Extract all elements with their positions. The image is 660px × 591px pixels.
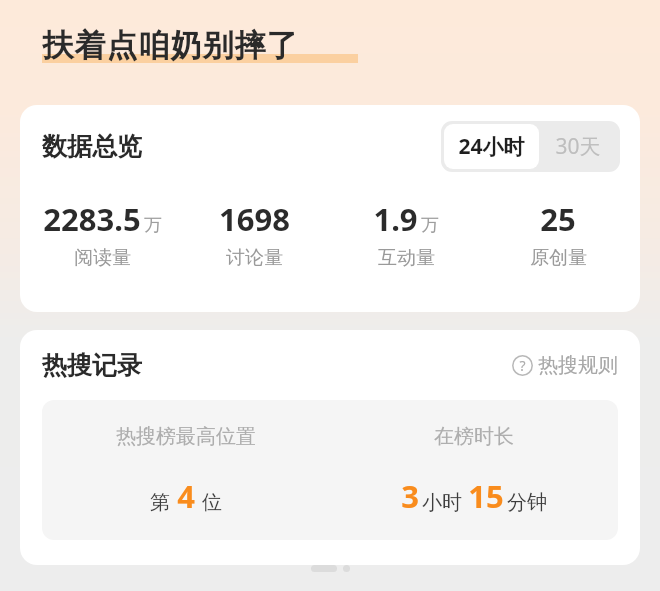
button[interactable]: 30天 [539, 124, 617, 169]
staticText: 扶着点咱奶别摔了 [42, 26, 298, 65]
staticText: 小时 [422, 490, 462, 515]
button[interactable]: 24小时 [444, 124, 539, 169]
staticText: 热搜榜最高位置 [116, 424, 256, 449]
staticText: 数据总览 [42, 131, 142, 162]
staticText: 24小时 [458, 132, 525, 161]
staticText: 30天 [555, 132, 601, 161]
staticText: 1.9 [373, 198, 418, 240]
staticText: 阅读量 [74, 246, 131, 270]
staticText: 1698 [219, 198, 290, 240]
staticText: 原创量 [530, 246, 587, 270]
button[interactable]: 在榜时长 [330, 400, 618, 540]
staticText: 互动量 [378, 246, 435, 270]
staticText: 讨论量 [226, 246, 283, 270]
staticText: 4 [177, 475, 195, 517]
staticText: 第 [150, 490, 170, 515]
staticText: 在榜时长 [434, 424, 514, 449]
button[interactable]: 1.9 [330, 198, 482, 270]
button[interactable]: 1698 [178, 198, 330, 270]
staticText: 万 [421, 214, 439, 237]
staticText: 分钟 [507, 490, 547, 515]
staticText: ? [519, 356, 526, 375]
staticText: 25 [540, 198, 576, 240]
staticText: 2283.5 [43, 198, 141, 240]
staticText: 万 [144, 214, 162, 237]
button[interactable]: 2283.5 [26, 198, 178, 270]
button[interactable]: 25 [482, 198, 634, 270]
staticText: 位 [202, 490, 222, 515]
staticText: 热搜记录 [42, 350, 142, 381]
button[interactable]: 热搜规则 [510, 349, 620, 382]
staticText: 15 [468, 475, 504, 517]
staticText: 3 [401, 475, 419, 517]
staticText: 热搜规则 [538, 353, 618, 378]
button[interactable]: 热搜榜最高位置 [42, 400, 330, 540]
